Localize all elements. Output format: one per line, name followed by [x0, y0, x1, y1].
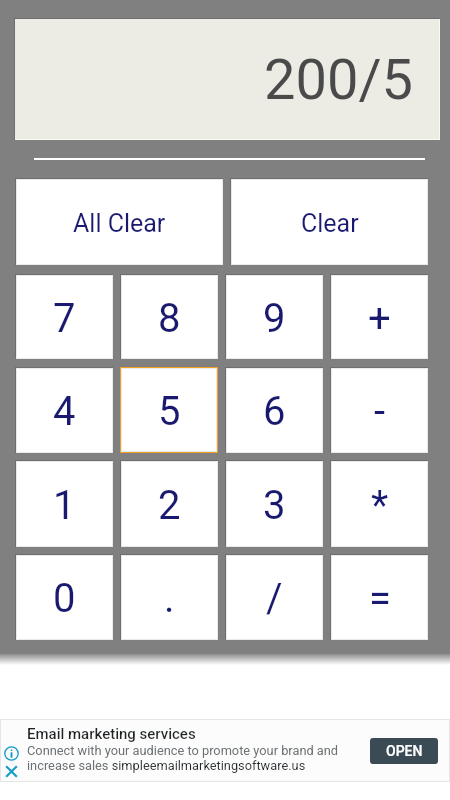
staticText: 5 [158, 388, 181, 435]
button[interactable]: 6 [227, 369, 322, 452]
button[interactable]: 8 [122, 276, 217, 358]
staticText: * [371, 482, 389, 529]
staticText: Clear [301, 209, 359, 238]
staticText: 9 [263, 295, 286, 342]
staticText: Email marketing services [27, 725, 196, 743]
button[interactable]: . [122, 556, 217, 639]
staticText: 6 [263, 388, 286, 435]
button[interactable]: Ad information [1, 720, 449, 781]
button[interactable]: / [227, 556, 322, 639]
staticText: 3 [263, 482, 286, 529]
button[interactable]: All Clear [17, 180, 222, 264]
button[interactable]: Ad information [4, 746, 19, 761]
staticText: + [368, 295, 391, 342]
staticText: 8 [158, 295, 181, 342]
staticText: 1 [53, 482, 76, 529]
staticText: 0 [53, 575, 76, 622]
button[interactable]: 4 [17, 369, 112, 452]
button[interactable]: 0 [17, 556, 112, 639]
staticText: Connect with your audience to promote yo… [27, 743, 339, 758]
button[interactable]: + [332, 276, 427, 358]
button[interactable]: Close ad [4, 764, 19, 779]
button[interactable]: 7 [17, 276, 112, 358]
button[interactable]: - [332, 369, 427, 452]
button[interactable]: Clear [232, 180, 427, 264]
button[interactable]: 5 [122, 369, 216, 451]
staticText: 4 [53, 388, 76, 435]
button[interactable]: * [332, 462, 427, 546]
staticText: 2 [158, 482, 181, 529]
staticText: All Clear [73, 209, 166, 238]
button[interactable]: 2 [122, 462, 217, 546]
button[interactable]: 1 [17, 462, 112, 546]
button[interactable]: 9 [227, 276, 322, 358]
staticText: . [164, 575, 175, 622]
staticText: / [266, 575, 283, 622]
button[interactable]: = [332, 556, 427, 639]
button[interactable]: OPEN [370, 738, 438, 764]
staticText: 200/5 [264, 47, 413, 113]
button[interactable]: 3 [227, 462, 322, 546]
staticText: = [369, 575, 391, 622]
staticText: - [374, 388, 386, 435]
staticText: increase sales simpleemailmarketingsoftw… [27, 758, 306, 773]
staticText: 7 [53, 295, 76, 342]
staticText: OPEN [386, 743, 423, 759]
